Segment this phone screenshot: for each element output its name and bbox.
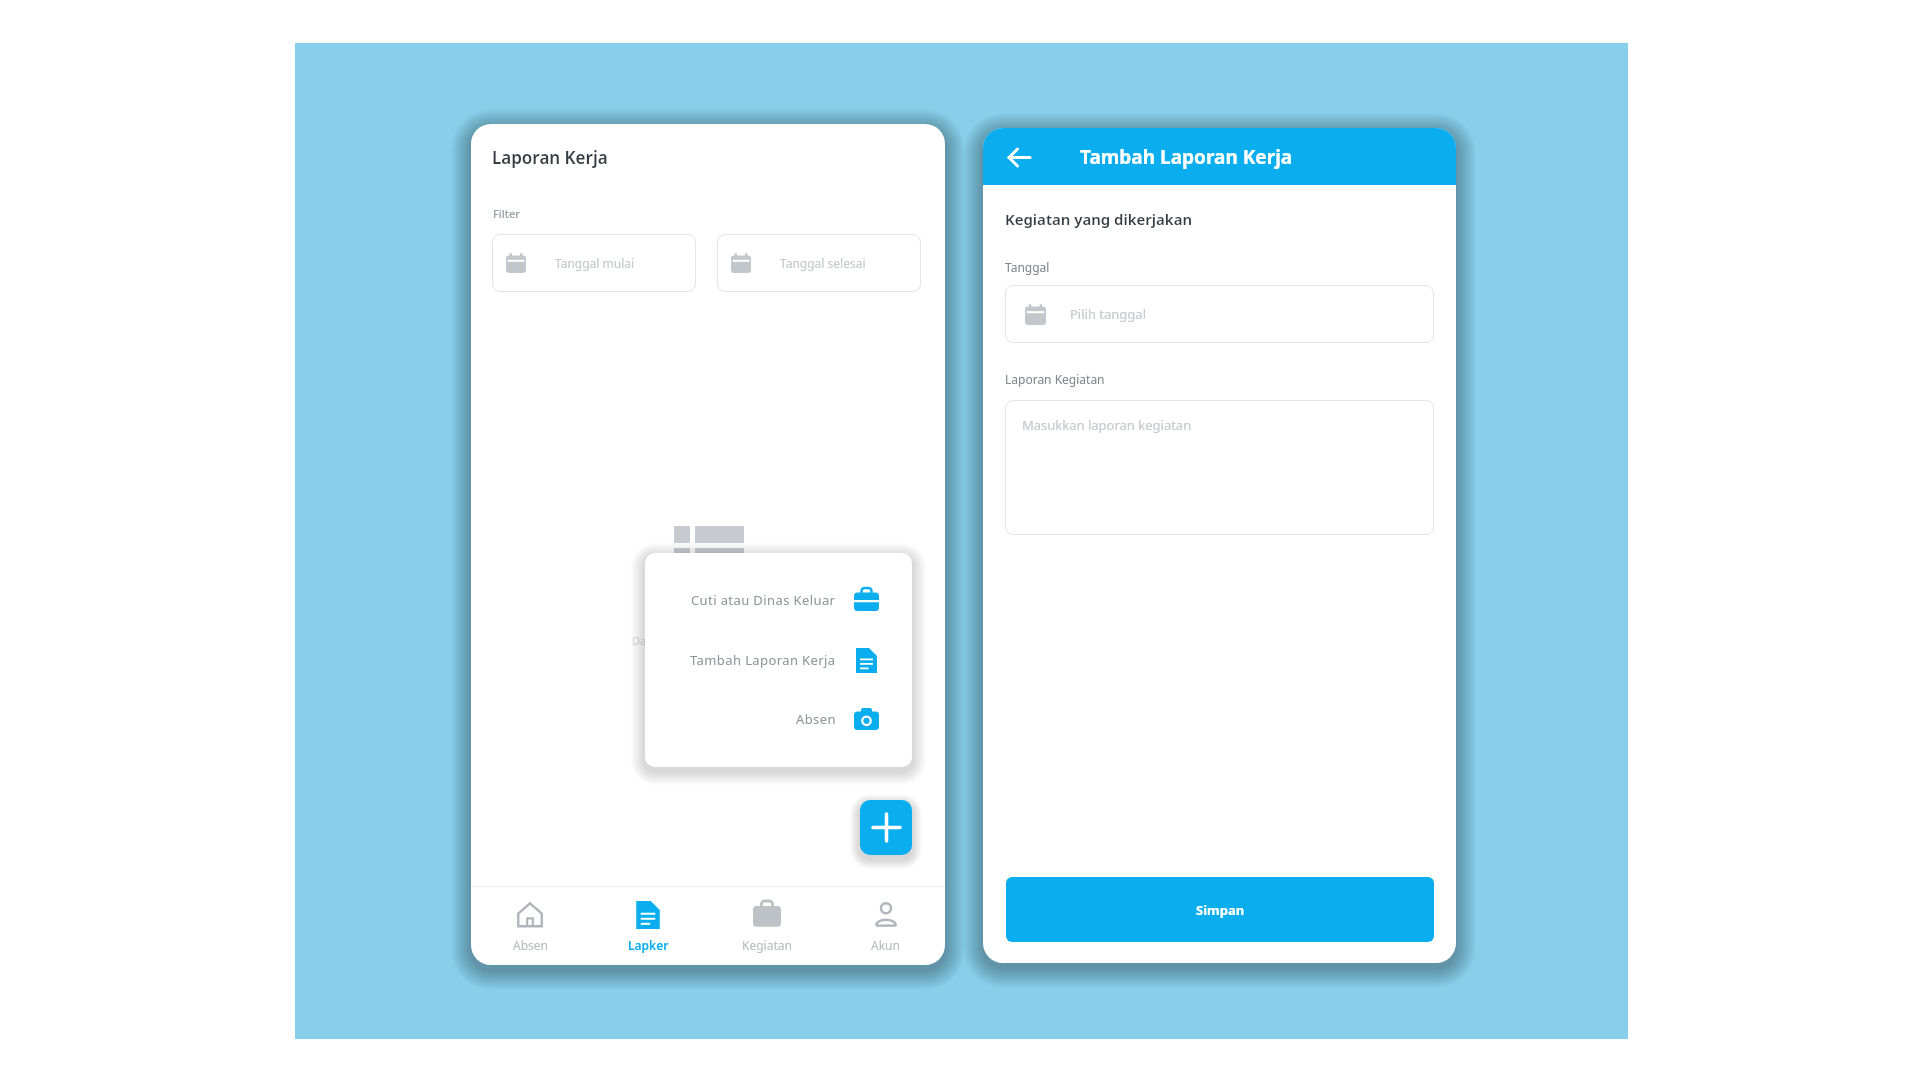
staticText: Kegiatan yang dikerjakan (1005, 209, 1193, 229)
staticText: Masukkan laporan kegiatan (1022, 416, 1192, 434)
button[interactable]: Tanggal selesai (717, 234, 921, 292)
button[interactable]: Simpan (1006, 877, 1434, 942)
staticText: Absen (796, 710, 836, 728)
button[interactable]: Lapker (589, 887, 707, 965)
staticText: Kegiatan (742, 937, 792, 953)
staticText: Absen (513, 937, 548, 953)
button[interactable] (860, 800, 912, 855)
button[interactable]: Pilih tanggal (1005, 285, 1434, 343)
button[interactable]: Tambah Laporan Kerja (645, 640, 912, 680)
staticText: Lapker (628, 937, 669, 953)
staticText: Cuti atau Dinas Keluar (691, 591, 836, 609)
button[interactable]: Absen (645, 699, 912, 739)
staticText: Tambah Laporan Kerja (1080, 144, 1293, 170)
staticText: Akun (871, 937, 900, 953)
staticText: Tanggal mulai (555, 255, 635, 271)
staticText: Data tidak ditemukan (632, 633, 744, 648)
button[interactable]: Tanggal mulai (492, 234, 696, 292)
staticText: Laporan Kegiatan (1005, 371, 1105, 387)
staticText: Laporan Kerja (492, 146, 608, 169)
button[interactable] (1007, 146, 1031, 168)
button[interactable]: Masukkan laporan kegiatan (1005, 400, 1434, 535)
staticText: Simpan (1196, 901, 1245, 919)
staticText: Tanggal selesai (780, 255, 866, 271)
staticText: Tanggal (1005, 259, 1050, 275)
button[interactable]: Cuti atau Dinas Keluar (645, 580, 912, 620)
button[interactable]: Akun (826, 887, 945, 965)
staticText: Filter (493, 206, 520, 221)
staticText: Tambah Laporan Kerja (690, 651, 836, 669)
staticText: Pilih tanggal (1070, 305, 1146, 323)
button[interactable]: Kegiatan (707, 887, 826, 965)
button[interactable]: Absen (471, 887, 589, 965)
